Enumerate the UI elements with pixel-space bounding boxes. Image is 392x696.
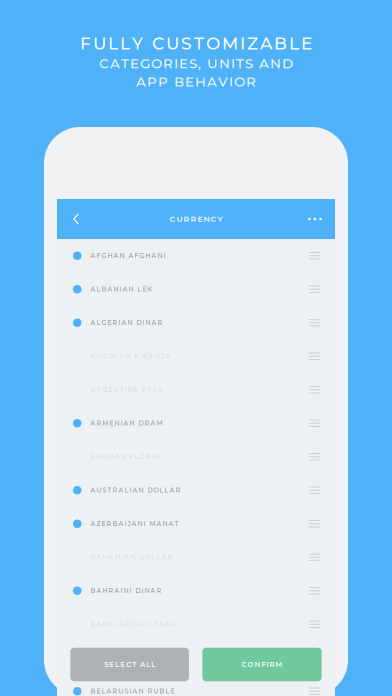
staticText: S E L E C T A L L — [104, 660, 155, 669]
button[interactable]: A U S T R A L I A N D O L L A R — [57, 473, 335, 507]
staticText: C O N F I R M — [241, 660, 282, 669]
button[interactable]: S E L E C T A L L — [70, 648, 189, 681]
staticText: A R M E N I A N D R A M — [90, 419, 162, 427]
button[interactable]: A Z E R B A I J A N I M A N A T — [57, 507, 335, 540]
staticText: A P P B E H A V I O R — [136, 74, 256, 90]
button[interactable]: More options — [295, 199, 335, 239]
staticText: A N G O L A N K W A N Z A — [90, 352, 170, 360]
staticText: A Z E R B A I J A N I M A N A T — [90, 520, 178, 528]
staticText: B A H R A I N I D I N A R — [90, 587, 161, 595]
button[interactable]: Back — [57, 199, 95, 239]
staticText: B A N G L A D E S H I T A K A — [90, 620, 175, 628]
staticText: C A T E G O R I E S , U N I T S A N D — [99, 55, 293, 71]
button[interactable]: C O N F I R M — [202, 648, 322, 681]
staticText: B E L A R U S I A N R U B L E — [90, 687, 174, 695]
staticText: F U L L Y C U S T O M I Z A B L E — [80, 33, 312, 54]
button[interactable]: B A R B A D I A N D O L L A R — [57, 641, 335, 674]
staticText: B A H A M I A N D O L L A R — [90, 553, 172, 561]
staticText: A U S T R A L I A N D O L L A R — [90, 486, 180, 494]
staticText: A R G E N T I N E P E S O — [90, 386, 162, 394]
button[interactable]: A L B A N I A N L E K — [57, 272, 335, 306]
staticText: C U R R E N C Y — [169, 214, 222, 224]
button[interactable]: A R M E N I A N D R A M — [57, 406, 335, 440]
staticText: A L G E R I A N D I N A R — [90, 319, 162, 327]
staticText: A R U B A N F L O R I N — [90, 453, 159, 461]
button[interactable]: B A H R A I N I D I N A R — [57, 574, 335, 607]
button[interactable]: B E L A R U S I A N R U B L E — [57, 674, 335, 696]
staticText: A L B A N I A N L E K — [90, 285, 152, 293]
button[interactable]: A F G H A N A F G H A N I — [57, 239, 335, 272]
button[interactable]: A L G E R I A N D I N A R — [57, 306, 335, 339]
staticText: A F G H A N A F G H A N I — [90, 252, 165, 260]
